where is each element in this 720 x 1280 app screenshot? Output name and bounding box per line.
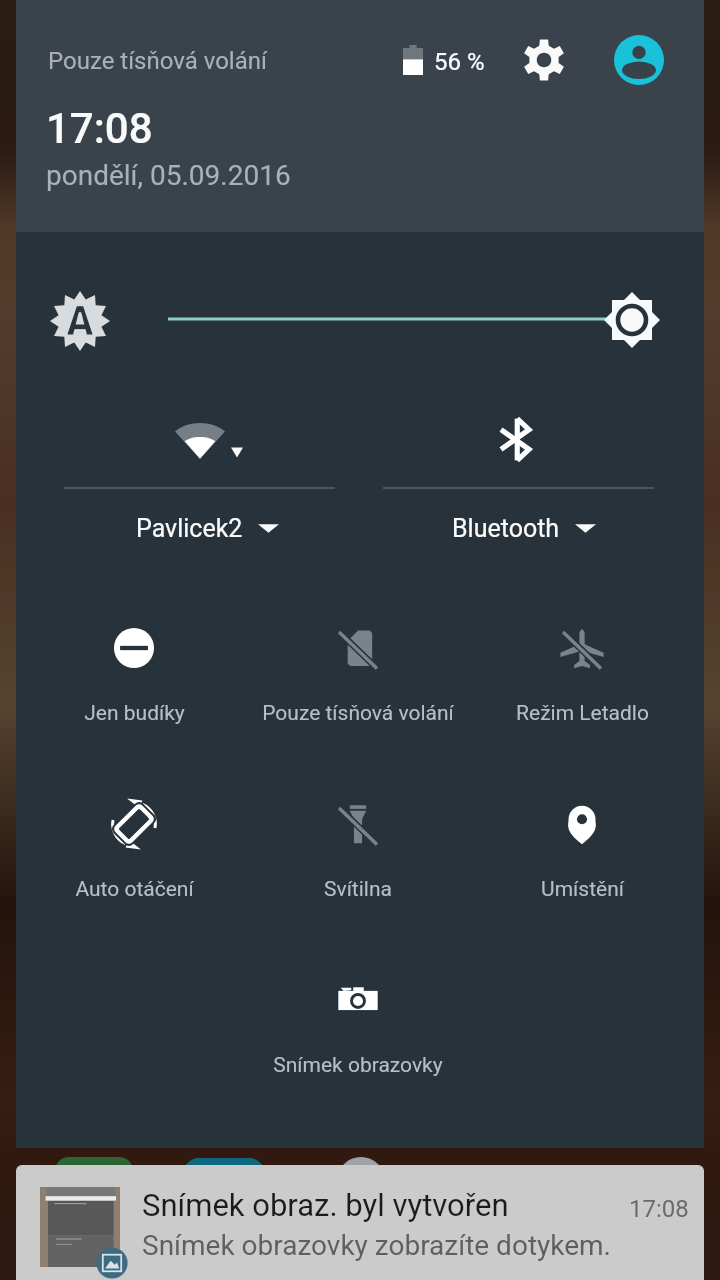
button[interactable]: Snímek obrazovky: [246, 964, 470, 1092]
staticText: pondělí, 05.09.2016: [46, 159, 291, 192]
staticText: 17:08: [629, 1195, 689, 1223]
staticText: Pouze tísňová volání: [48, 47, 267, 75]
staticText: Snímek obrazovky zobrazíte dotykem.: [142, 1229, 611, 1262]
button[interactable]: Bluetooth: [452, 514, 596, 543]
button[interactable]: Bluetooth: [383, 400, 654, 480]
button[interactable]: Režim Letadlo: [470, 612, 694, 740]
button[interactable]: Snímek obraz. byl vytvořen: [16, 1165, 704, 1280]
staticText: Pavlicek2: [136, 514, 243, 543]
staticText: 56 %: [434, 48, 485, 76]
staticText: Auto otáčení: [75, 877, 194, 902]
button[interactable]: Pavlicek2: [136, 514, 279, 543]
button[interactable]: Svítilna: [246, 788, 470, 916]
button[interactable]: Jen budíky: [22, 612, 246, 740]
staticText: Snímek obraz. byl vytvořen: [142, 1187, 509, 1223]
staticText: Snímek obrazovky: [273, 1053, 443, 1078]
staticText: Režim Letadlo: [516, 701, 649, 726]
staticText: 17:08: [46, 104, 153, 153]
staticText: Umístění: [541, 877, 624, 902]
button[interactable]: Umístění: [470, 788, 694, 916]
button[interactable]: Pouze tísňová volání: [246, 612, 470, 740]
button[interactable]: Settings: [514, 30, 574, 90]
button[interactable]: User profile: [614, 35, 664, 85]
staticText: Bluetooth: [452, 514, 560, 543]
staticText: Svítilna: [324, 877, 392, 902]
staticText: Pouze tísňová volání: [262, 701, 454, 726]
button[interactable]: Wi-Fi: [64, 400, 335, 480]
staticText: Jen budíky: [84, 701, 185, 726]
button[interactable]: Auto otáčení: [22, 788, 246, 916]
